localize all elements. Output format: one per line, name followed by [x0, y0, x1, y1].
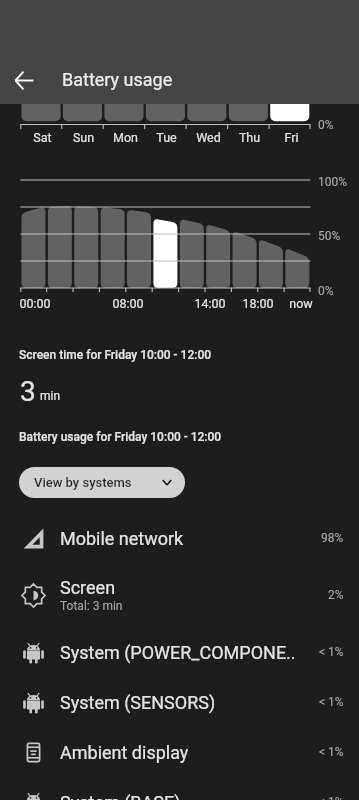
staticText: Sat — [22, 130, 63, 145]
staticText: Fri — [271, 130, 312, 145]
staticText: < 1% — [319, 695, 344, 709]
staticText: Mobile network — [60, 528, 184, 549]
staticText: min — [40, 389, 61, 403]
staticText: 50% — [318, 229, 341, 243]
button[interactable]: Ambient display — [0, 727, 359, 777]
staticText: 3 — [20, 375, 36, 408]
staticText: 08:00 — [98, 296, 158, 311]
staticText: Thu — [229, 130, 270, 145]
staticText: 98% — [321, 531, 344, 545]
staticText: < 1% — [319, 795, 344, 800]
staticText: 0% — [318, 284, 334, 298]
staticText: 0% — [318, 118, 334, 132]
staticText: < 1% — [319, 745, 344, 759]
staticText: < 1% — [319, 645, 344, 659]
staticText: Total: 3 min — [60, 599, 123, 613]
staticText: Wed — [188, 130, 229, 145]
staticText: 18:00 — [228, 296, 288, 311]
staticText: 2% — [328, 588, 344, 602]
staticText: 00:00 — [5, 296, 65, 311]
button[interactable]: System (SENSORS) — [0, 677, 359, 727]
staticText: Screen time for Friday 10:00 - 12:00 — [19, 348, 212, 362]
button[interactable]: Mobile network — [0, 513, 359, 563]
staticText: View by systems — [34, 475, 132, 490]
staticText: System (BASE) — [60, 792, 181, 800]
staticText: 100% — [318, 175, 348, 189]
button[interactable]: System (BASE) — [0, 777, 359, 800]
staticText: 14:00 — [180, 296, 240, 311]
button[interactable]: Back — [8, 64, 40, 96]
staticText: Battery usage for Friday 10:00 - 12:00 — [19, 430, 222, 444]
button[interactable]: System (POWER_COMPONE.. — [0, 627, 359, 677]
staticText: Mon — [105, 130, 146, 145]
button[interactable]: View by systems — [19, 467, 185, 498]
staticText: System (POWER_COMPONE.. — [60, 642, 296, 663]
staticText: Screen — [60, 577, 116, 598]
button[interactable]: Screen — [0, 563, 359, 627]
staticText: Sun — [63, 130, 104, 145]
staticText: now — [271, 296, 331, 311]
staticText: Battery usage — [62, 69, 173, 90]
staticText: System (SENSORS) — [60, 692, 216, 713]
staticText: Ambient display — [60, 742, 189, 763]
staticText: Tue — [146, 130, 187, 145]
